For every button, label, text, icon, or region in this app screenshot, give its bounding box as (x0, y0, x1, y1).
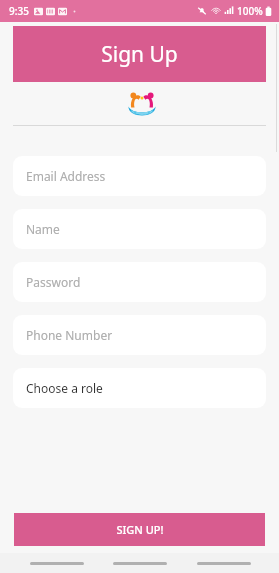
staticText: SIGN UP! (116, 522, 164, 537)
button[interactable]: Name (13, 209, 266, 249)
staticText: 9:35 (9, 4, 29, 18)
button[interactable]: Home (112, 553, 167, 573)
button[interactable]: Recent apps (29, 553, 84, 573)
button[interactable]: Email Address (13, 156, 266, 196)
staticText: Sign Up (101, 40, 178, 69)
button[interactable]: SIGN UP! (14, 513, 265, 546)
button[interactable]: Sign Up (13, 26, 266, 82)
staticText: Email Address (26, 168, 106, 184)
button[interactable]: Back (196, 553, 251, 573)
staticText: Choose a role (26, 380, 103, 396)
staticText: Password (26, 274, 81, 290)
staticText: Phone Number (26, 327, 113, 343)
button[interactable]: Password (13, 262, 266, 302)
staticText: Name (26, 221, 60, 237)
button[interactable]: Choose a role (13, 368, 266, 408)
staticText: 100% (237, 4, 263, 18)
button[interactable]: Phone Number (13, 315, 266, 355)
